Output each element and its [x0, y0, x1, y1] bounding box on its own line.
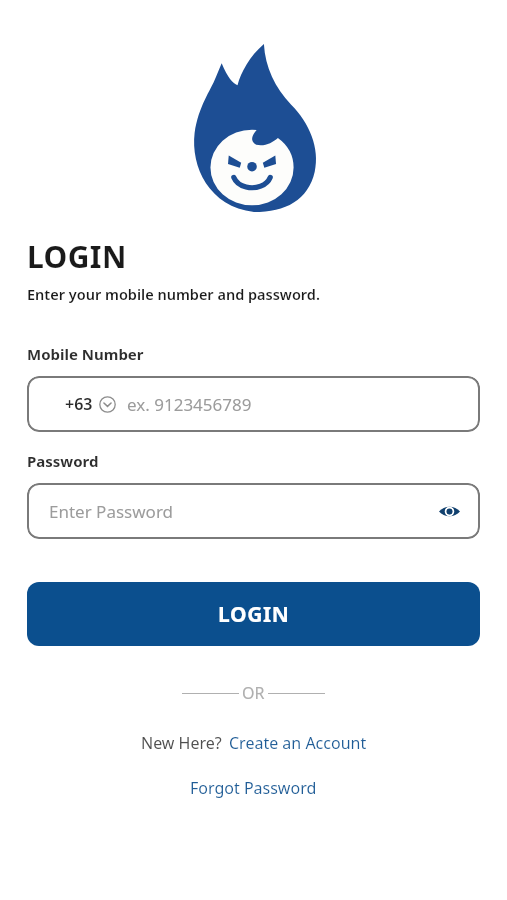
button[interactable]: Enter Password [27, 483, 480, 539]
button[interactable]: LOGIN [27, 582, 480, 646]
button[interactable]: +63 [27, 376, 480, 432]
staticText: New Here? [141, 732, 222, 754]
staticText: Password [27, 451, 99, 471]
button[interactable]: Create an Account [229, 732, 367, 754]
other: Select country code [99, 396, 116, 413]
staticText: Create an Account [229, 732, 367, 754]
staticText: ex. 9123456789 [127, 393, 252, 416]
staticText: +63 [65, 393, 93, 415]
button[interactable]: Forgot Password [184, 775, 323, 801]
staticText: Enter Password [49, 500, 174, 523]
staticText: LOGIN [27, 236, 127, 277]
staticText: Forgot Password [190, 777, 317, 799]
staticText: OR [242, 682, 265, 704]
staticText: LOGIN [218, 600, 290, 629]
staticText: Mobile Number [27, 344, 144, 364]
staticText: Enter your mobile number and password. [27, 284, 320, 304]
button[interactable]: Show password [434, 496, 464, 526]
